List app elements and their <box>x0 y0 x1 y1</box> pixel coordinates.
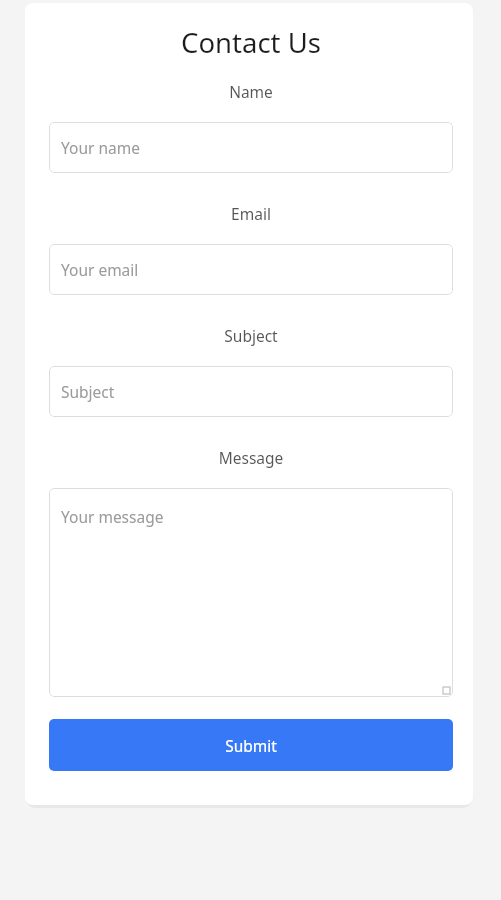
staticText: Your message <box>61 506 164 527</box>
button[interactable]: Subject <box>49 366 453 417</box>
staticText: Name <box>49 81 453 102</box>
staticText: Contact Us <box>181 24 321 61</box>
staticText: Email <box>49 203 453 224</box>
staticText: Subject <box>61 381 115 402</box>
staticText: Submit <box>225 735 277 756</box>
staticText: Your email <box>61 259 139 280</box>
button[interactable]: Your message <box>49 488 453 697</box>
staticText: Subject <box>49 325 453 346</box>
button[interactable]: Your name <box>49 122 453 173</box>
staticText: Message <box>49 447 453 468</box>
staticText: Your name <box>61 137 140 158</box>
button[interactable]: Your email <box>49 244 453 295</box>
button[interactable]: Submit <box>49 719 453 771</box>
